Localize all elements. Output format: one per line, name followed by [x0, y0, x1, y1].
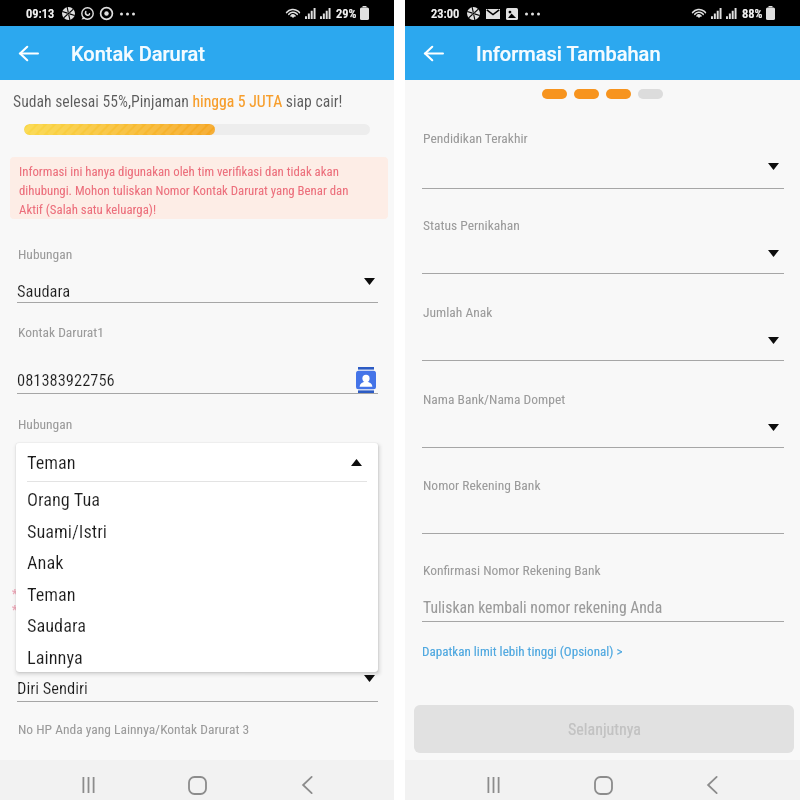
button[interactable]: Teman: [16, 443, 378, 481]
button[interactable]: Open dropdown: [768, 250, 779, 257]
button[interactable]: Recent apps: [66, 770, 110, 800]
staticText: Hubungan: [18, 246, 73, 262]
button[interactable]: Lainnya: [16, 642, 378, 672]
staticText: Tuliskan kembali nomor rekening Anda: [423, 598, 663, 616]
button[interactable]: Open dropdown: [768, 424, 779, 431]
staticText: Pendidikan Terakhir: [423, 130, 528, 146]
button[interactable]: Open dropdown: [364, 675, 375, 682]
staticText: Status Pernikahan: [423, 217, 520, 233]
staticText: Kontak Darurat: [71, 42, 205, 65]
button[interactable]: Open dropdown: [768, 337, 779, 344]
staticText: Informasi Tambahan: [476, 42, 661, 65]
button[interactable]: Open dropdown: [364, 278, 375, 285]
button[interactable]: Open dropdown: [768, 163, 779, 170]
staticText: 23:00: [431, 6, 460, 21]
staticText: Diri Sendiri: [17, 679, 88, 698]
staticText: Teman: [27, 584, 76, 605]
button[interactable]: Pick contact: [356, 367, 376, 393]
staticText: Sudah selesai 55%,Pinjaman hingga 5 JUTA…: [13, 92, 343, 110]
staticText: 09:13: [26, 6, 55, 21]
staticText: Informasi ini hanya digunakan oleh tim v…: [19, 164, 359, 217]
staticText: 081383922756: [17, 371, 115, 390]
button[interactable]: Saudara: [16, 610, 378, 641]
staticText: Nama Bank/Nama Dompet: [423, 391, 566, 407]
staticText: Anak: [27, 552, 64, 573]
button[interactable]: Recent apps: [471, 770, 515, 800]
button[interactable]: Orang Tua: [16, 484, 378, 515]
staticText: Saudara: [27, 615, 86, 636]
button[interactable]: Suami/Istri: [16, 516, 378, 547]
staticText: 29%: [336, 6, 357, 21]
staticText: Jumlah Anak: [423, 304, 493, 320]
button[interactable]: Back: [690, 770, 734, 800]
button[interactable]: Back: [9, 34, 47, 72]
staticText: Suami/Istri: [27, 521, 107, 542]
staticText: Konfirmasi Nomor Rekening Bank: [423, 562, 601, 578]
button[interactable]: Home: [581, 770, 625, 800]
staticText: Nomor Rekening Bank: [423, 477, 541, 493]
button[interactable]: Dapatkan limit lebih tinggi (Opsional) >: [422, 644, 623, 659]
staticText: Hubungan: [18, 416, 73, 432]
staticText: Saudara: [17, 282, 71, 301]
staticText: Kontak Darurat1: [18, 324, 104, 340]
button[interactable]: Back: [414, 34, 452, 72]
staticText: Selanjutnya: [568, 720, 641, 739]
staticText: *: [12, 586, 18, 601]
staticText: Orang Tua: [27, 489, 100, 510]
button[interactable]: Back: [285, 770, 329, 800]
staticText: No HP Anda yang Lainnya/Kontak Darurat 3: [18, 721, 250, 737]
staticText: Teman: [27, 452, 76, 473]
staticText: Lainnya: [27, 647, 83, 668]
staticText: *: [12, 602, 18, 617]
button[interactable]: Teman: [16, 579, 378, 610]
button[interactable]: Home: [175, 770, 219, 800]
staticText: 88%: [742, 6, 763, 21]
button[interactable]: Selanjutnya: [414, 705, 794, 753]
button[interactable]: Anak: [16, 547, 378, 578]
